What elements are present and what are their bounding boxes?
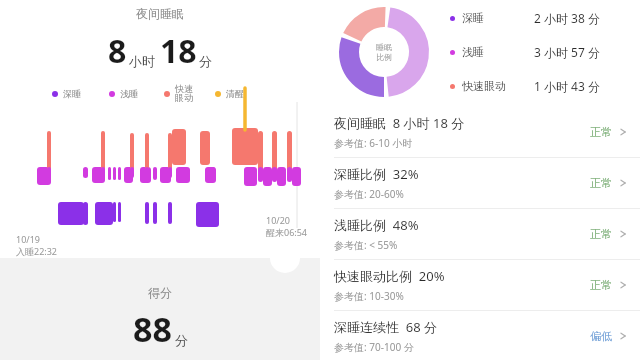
staticText: 分	[199, 53, 212, 69]
other: Details	[618, 178, 628, 188]
staticText: 清醒	[226, 88, 244, 99]
staticText: 8	[108, 29, 127, 73]
staticText: 88	[133, 306, 172, 352]
staticText: 快速眼动比例 20%	[334, 267, 445, 285]
staticText: 夜间睡眠	[0, 6, 320, 21]
staticText: 正常	[590, 227, 612, 241]
staticText: 正常	[590, 125, 612, 139]
staticText: 偏低	[590, 329, 612, 343]
staticText: 深睡连续性 68 分	[334, 318, 438, 336]
staticText: 分	[175, 332, 188, 348]
staticText: 睡眠	[376, 42, 392, 52]
staticText: 正常	[590, 278, 612, 292]
other: Details	[618, 280, 628, 290]
button[interactable]: 深睡比例 32%	[320, 158, 640, 208]
staticText: 参考值: < 55%	[334, 238, 398, 252]
staticText: 得分	[148, 285, 172, 300]
staticText: 浅睡	[462, 45, 484, 59]
staticText: 深睡比例 32%	[334, 165, 419, 183]
other: Details	[618, 331, 628, 341]
staticText: 1 小时 43 分	[534, 78, 600, 94]
staticText: 快速眼动	[462, 79, 506, 93]
staticText: 浅睡比例 48%	[334, 216, 419, 234]
staticText: 正常	[590, 176, 612, 190]
staticText: 10/20	[266, 214, 290, 226]
staticText: 夜间睡眠 8 小时 18 分	[334, 114, 465, 132]
other: Details	[618, 127, 628, 137]
staticText: 比例	[376, 52, 392, 62]
staticText: 参考值: 70-100 分	[334, 340, 414, 354]
staticText: 3 小时 57 分	[534, 44, 600, 60]
staticText: 18	[160, 29, 197, 73]
staticText: 入睡22:32	[16, 245, 58, 257]
staticText: 参考值: 6-10 小时	[334, 136, 413, 150]
button[interactable]: 快速眼动比例 20%	[320, 260, 640, 310]
staticText: 快速 眼动	[175, 83, 193, 104]
button[interactable]: 夜间睡眠 8 小时 18 分	[320, 107, 640, 157]
staticText: 参考值: 20-60%	[334, 187, 404, 201]
staticText: 醒来06:54	[266, 226, 308, 238]
staticText: 浅睡	[120, 88, 138, 99]
button[interactable]: 深睡连续性 68 分	[320, 311, 640, 360]
staticText: 10/19	[16, 233, 40, 245]
other: Details	[618, 229, 628, 239]
staticText: 2 小时 38 分	[534, 10, 600, 26]
staticText: 深睡	[63, 88, 81, 99]
staticText: 深睡	[462, 11, 484, 25]
button[interactable]: 浅睡比例 48%	[320, 209, 640, 259]
staticText: 小时	[129, 53, 155, 69]
staticText: 参考值: 10-30%	[334, 289, 404, 303]
